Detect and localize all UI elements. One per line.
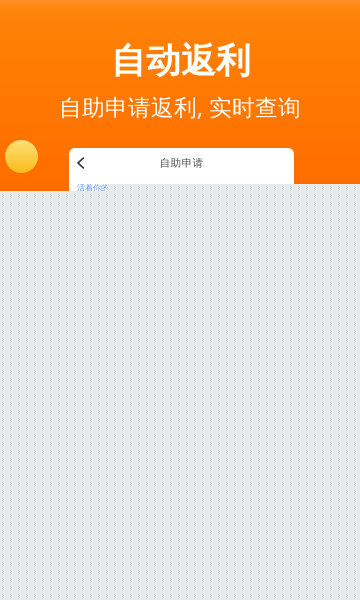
staticText: 自动返利 [111,40,251,82]
staticText: 自助申请返利, 实时查询 [59,92,301,122]
staticText: 活着你的 [77,183,109,193]
staticText: 自助申请 [159,156,203,169]
